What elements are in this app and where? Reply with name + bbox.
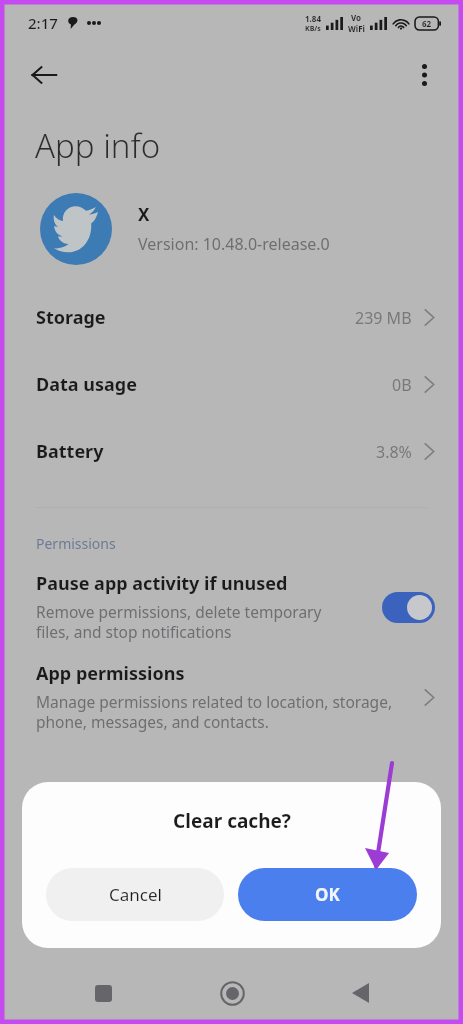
staticText: OK [315, 883, 340, 906]
staticText: Version: 10.48.0-release.0 [138, 233, 330, 255]
staticText: WiFi [348, 23, 365, 34]
staticText: Battery [36, 439, 104, 464]
button[interactable]: Data usage [0, 351, 463, 418]
staticText: Pause app activity if unused [36, 571, 288, 596]
button[interactable]: Battery [0, 418, 463, 485]
staticText: 62 [422, 18, 432, 29]
button[interactable]: Cancel [46, 868, 224, 921]
staticText: Clear cache? [173, 808, 291, 834]
staticText: X [138, 203, 150, 226]
staticText: Data usage [36, 372, 137, 397]
button[interactable]: Back [334, 967, 386, 1019]
staticText: Storage [36, 305, 106, 330]
button[interactable]: Storage [0, 284, 463, 351]
staticText: 3.8% [376, 441, 412, 463]
staticText: App info [35, 123, 161, 168]
button[interactable]: Home [206, 967, 258, 1019]
button[interactable]: More options [403, 54, 445, 96]
staticText: Cancel [109, 883, 162, 906]
button[interactable]: Back [22, 53, 66, 97]
staticText: 0B [392, 374, 412, 396]
staticText: 2:17 [28, 13, 58, 33]
staticText: Vo [351, 12, 362, 23]
button[interactable]: OK [238, 868, 417, 921]
button[interactable]: Pause app activity if unused [0, 569, 463, 645]
button[interactable]: App permissions [0, 655, 463, 739]
button[interactable]: Pause app activity toggle [382, 592, 435, 623]
staticText: Manage permissions related to location, … [36, 691, 393, 733]
staticText: KB/s [305, 24, 321, 34]
staticText: App permissions [36, 661, 185, 686]
staticText: Permissions [36, 534, 116, 553]
staticText: Remove permissions, delete temporary fil… [36, 601, 322, 643]
staticText: 1.84 [305, 13, 321, 24]
button[interactable]: Recent apps [77, 967, 129, 1019]
staticText: 239 MB [355, 307, 412, 329]
